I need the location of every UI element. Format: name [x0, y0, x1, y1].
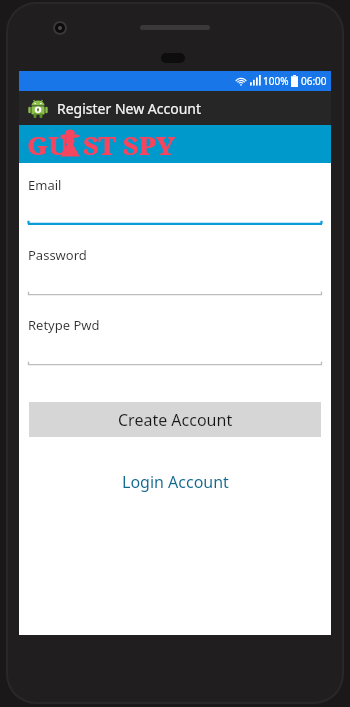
staticText: 06:00	[301, 74, 327, 88]
button[interactable]: Email	[19, 176, 331, 246]
other: App icon	[27, 97, 49, 119]
staticText: Email	[28, 176, 62, 194]
staticText: ST SPY	[83, 127, 175, 162]
staticText: 100%	[263, 74, 289, 88]
button[interactable]: Create Account	[29, 402, 321, 437]
staticText: Create Account	[118, 409, 233, 431]
staticText: Register New Account	[57, 99, 202, 118]
staticText: GU	[27, 127, 69, 162]
button[interactable]: Password	[19, 246, 331, 316]
button[interactable]: Login Account	[19, 468, 331, 496]
button[interactable]: Retype Pwd	[19, 316, 331, 386]
staticText: Retype Pwd	[28, 316, 100, 334]
staticText: Password	[28, 246, 87, 264]
staticText: Login Account	[122, 471, 229, 493]
